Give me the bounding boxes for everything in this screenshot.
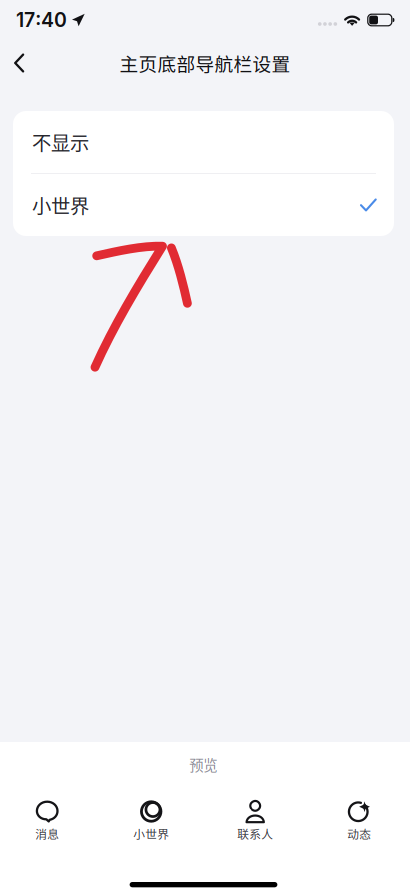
staticText: 联系人 (237, 825, 273, 842)
button[interactable]: 小世界 (13, 174, 394, 236)
staticText: 消息 (35, 825, 59, 842)
button[interactable]: 动态 (307, 800, 410, 842)
staticText: 主页底部导航栏设置 (119, 49, 290, 76)
button[interactable]: 联系人 (203, 800, 307, 842)
staticText: 动态 (347, 825, 371, 842)
staticText: 预览 (189, 754, 217, 775)
button[interactable]: 返回 (0, 41, 44, 85)
button[interactable]: 小世界 (99, 800, 203, 842)
staticText: 17:40 (16, 8, 67, 32)
staticText: 小世界 (32, 191, 89, 219)
button[interactable]: 不显示 (13, 111, 394, 173)
staticText: 不显示 (32, 128, 89, 156)
button[interactable]: 消息 (0, 800, 99, 842)
staticText: 小世界 (133, 825, 169, 842)
